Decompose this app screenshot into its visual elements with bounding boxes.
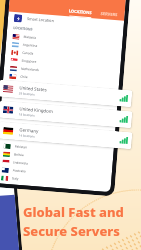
other: Signal strength	[119, 136, 128, 144]
button[interactable]: Indonesia	[2, 157, 106, 174]
button[interactable]: United States	[0, 80, 132, 107]
staticText: United Kingdom	[19, 105, 53, 114]
button[interactable]: United Kingdom	[0, 101, 132, 128]
staticText: 29 locations	[19, 91, 35, 97]
button[interactable]: Germany	[0, 122, 132, 149]
staticText: Global Fast and	[23, 203, 124, 221]
staticText: Smart Location	[27, 16, 54, 23]
staticText: Canada	[22, 51, 33, 56]
other: Signal strength	[119, 94, 128, 102]
staticText: Argentina	[23, 43, 38, 48]
staticText: Chile	[20, 75, 28, 79]
button[interactable]: LOCATIONS	[66, 8, 94, 18]
button[interactable]: Bolivia	[3, 150, 107, 166]
button[interactable]: Canada	[11, 48, 115, 64]
staticText: Pakistan	[15, 144, 28, 149]
button[interactable]: Malaysia	[12, 32, 117, 48]
button[interactable]: Pakistan	[3, 142, 108, 158]
button[interactable]: Smart Location	[14, 12, 118, 31]
button[interactable]: Australia	[1, 165, 106, 182]
button[interactable]: Netherlands	[10, 64, 114, 80]
staticText: Singapore	[21, 59, 37, 64]
button[interactable]: Italy	[1, 173, 105, 190]
staticText: Secure Servers	[23, 222, 120, 240]
staticText: 14 locations	[19, 133, 35, 139]
staticText: Italy	[12, 176, 19, 181]
button[interactable]: SERVERS	[98, 11, 120, 20]
staticText: Bolivia	[14, 152, 24, 157]
staticText: LOCATIONS	[69, 8, 92, 15]
staticText: Indonesia	[13, 160, 29, 166]
staticText: Malaysia	[23, 35, 37, 40]
other: Signal strength	[119, 115, 128, 123]
staticText: Australia	[13, 168, 26, 173]
staticText: Germany	[19, 126, 39, 134]
staticText: United States	[19, 84, 47, 92]
button[interactable]: Chile	[9, 72, 113, 88]
button[interactable]: Argentina	[12, 40, 116, 56]
staticText: LOCATIONS	[13, 25, 33, 32]
staticText: SERVERS	[100, 11, 118, 17]
button[interactable]: Singapore	[10, 56, 115, 72]
staticText: Netherlands	[21, 67, 39, 72]
staticText: 18 locations	[19, 112, 35, 118]
